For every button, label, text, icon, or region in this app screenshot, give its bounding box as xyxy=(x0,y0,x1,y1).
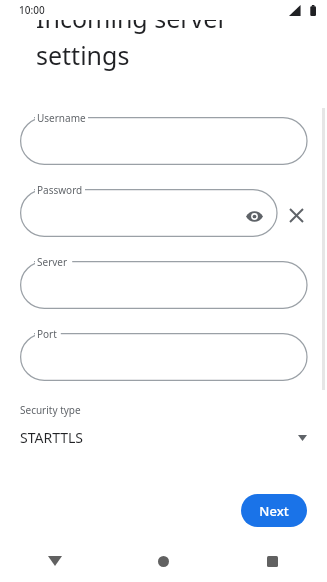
staticText: Server xyxy=(37,255,68,269)
button[interactable]: Server xyxy=(20,255,307,315)
button[interactable]: Clear password xyxy=(283,202,310,229)
button[interactable]: Show password xyxy=(241,203,268,230)
staticText: STARTTLS xyxy=(20,428,84,447)
button[interactable]: Back xyxy=(0,540,109,582)
staticText: settings xyxy=(36,38,130,72)
button[interactable]: Security type xyxy=(20,403,307,447)
button[interactable]: Home xyxy=(109,540,218,582)
button[interactable]: Next xyxy=(241,494,307,527)
staticText: Security type xyxy=(20,403,81,417)
button[interactable]: Port xyxy=(20,327,307,387)
staticText: Incoming server xyxy=(36,1,228,35)
staticText: Port xyxy=(37,327,57,341)
button[interactable]: Password xyxy=(20,183,277,243)
staticText: 10:00 xyxy=(19,3,45,17)
button[interactable]: Recent apps xyxy=(218,540,327,582)
staticText: Password xyxy=(37,183,83,197)
button[interactable]: Username xyxy=(20,111,307,171)
staticText: Next xyxy=(259,502,289,520)
staticText: Username xyxy=(37,111,86,125)
